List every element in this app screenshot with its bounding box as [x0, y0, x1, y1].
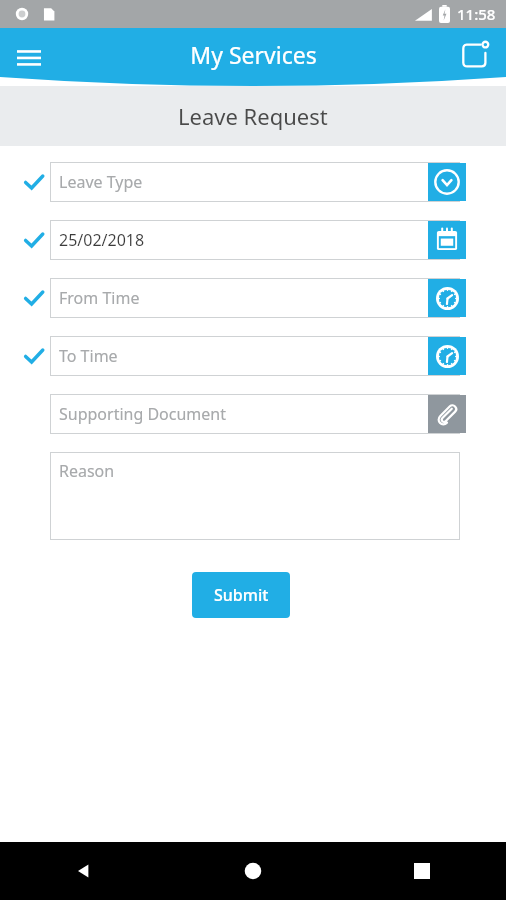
staticText: To Time — [59, 345, 118, 367]
staticText: 25/02/2018 — [59, 229, 145, 251]
staticText: Leave Request — [178, 101, 328, 131]
button[interactable]: Submit — [192, 572, 290, 618]
staticText: Reason — [59, 460, 115, 482]
button[interactable]: Pick time — [428, 337, 466, 375]
button[interactable]: Supporting Document — [50, 394, 460, 434]
button[interactable]: 25/02/2018 — [50, 220, 460, 260]
button[interactable]: Recent apps — [337, 842, 506, 900]
button[interactable]: Select leave type — [428, 163, 466, 201]
staticText: From Time — [59, 287, 140, 309]
button[interactable]: Pick date — [428, 221, 466, 259]
staticText: My Services — [190, 39, 317, 70]
button[interactable]: Menu — [6, 34, 52, 80]
button[interactable]: Reason — [50, 452, 460, 540]
button[interactable]: Leave Type — [50, 162, 460, 202]
button[interactable]: To Time — [50, 336, 460, 376]
button[interactable]: Pick time — [428, 279, 466, 317]
button[interactable]: From Time — [50, 278, 460, 318]
button[interactable]: Notifications — [452, 34, 498, 80]
staticText: Submit — [214, 584, 269, 606]
button[interactable]: Back — [0, 842, 168, 900]
button[interactable]: Home — [168, 842, 337, 900]
staticText: Leave Type — [59, 171, 143, 193]
staticText: Supporting Document — [59, 403, 227, 425]
button[interactable]: Attach document — [428, 395, 466, 433]
staticText: 11:58 — [457, 4, 496, 24]
